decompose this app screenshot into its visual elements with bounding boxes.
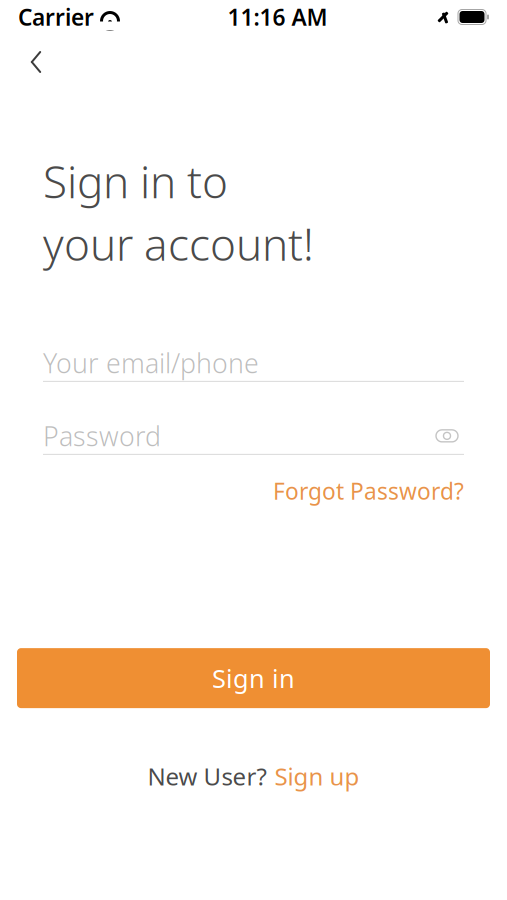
button[interactable]: Sign up xyxy=(274,760,359,792)
staticText: Your email/phone xyxy=(43,345,259,381)
button[interactable]: Sign in xyxy=(17,648,490,708)
staticText: Sign in xyxy=(212,661,295,695)
staticText: New User? xyxy=(147,760,266,792)
button[interactable]: Back xyxy=(12,38,60,86)
staticText: 11:16 AM xyxy=(227,2,327,32)
staticText: Carrier xyxy=(18,2,94,32)
button[interactable]: Forgot Password? xyxy=(273,476,464,506)
button[interactable]: Show password xyxy=(430,421,464,451)
staticText: Forgot Password? xyxy=(273,476,464,506)
staticText: Password xyxy=(43,418,161,454)
staticText: Sign up xyxy=(274,760,359,792)
staticText: your account! xyxy=(43,214,314,273)
staticText: Sign in to xyxy=(43,152,228,210)
